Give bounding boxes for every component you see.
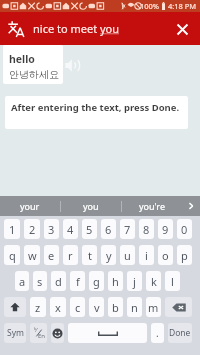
- button[interactable]: Play audio: [64, 57, 80, 73]
- staticText: you're: [139, 200, 165, 212]
- staticText: 2: [29, 222, 36, 237]
- staticText: hello: [9, 52, 35, 66]
- button[interactable]: q: [4, 245, 20, 265]
- button[interactable]: Translate: [0, 13, 32, 45]
- button[interactable]: m: [146, 297, 161, 317]
- button[interactable]: you're: [122, 196, 182, 216]
- button[interactable]: More suggestions: [182, 196, 200, 216]
- button[interactable]: g: [89, 271, 104, 291]
- staticText: x: [55, 300, 61, 315]
- button[interactable]: Close: [166, 13, 198, 45]
- button[interactable]: p: [177, 245, 192, 265]
- button[interactable]: Switch language: [30, 323, 47, 343]
- button[interactable]: l: [165, 271, 180, 291]
- staticText: 4: [67, 222, 74, 237]
- staticText: v: [94, 300, 100, 315]
- button[interactable]: z: [30, 297, 46, 317]
- staticText: 6: [105, 222, 112, 237]
- staticText: 9: [162, 222, 169, 237]
- button[interactable]: Emoji: [51, 323, 64, 343]
- button[interactable]: n: [127, 297, 142, 317]
- button[interactable]: your: [0, 196, 60, 216]
- button[interactable]: f: [70, 271, 85, 291]
- staticText: 4:18 PM: [168, 1, 197, 11]
- button[interactable]: 3: [44, 219, 59, 239]
- staticText: p: [181, 248, 188, 263]
- staticText: En: [38, 332, 46, 340]
- button[interactable]: d: [51, 271, 66, 291]
- button[interactable]: Done: [168, 323, 192, 343]
- button[interactable]: Backspace: [165, 297, 192, 317]
- staticText: c: [75, 300, 81, 315]
- staticText: Sym: [7, 327, 24, 339]
- button[interactable]: 7: [120, 219, 135, 239]
- button[interactable]: v: [89, 297, 104, 317]
- button[interactable]: j: [127, 271, 142, 291]
- staticText: 100%: [140, 1, 160, 11]
- staticText: y: [106, 248, 112, 263]
- button[interactable]: i: [139, 245, 154, 265]
- button[interactable]: 5: [82, 219, 97, 239]
- button[interactable]: 8: [139, 219, 154, 239]
- button[interactable]: r: [63, 245, 78, 265]
- staticText: 5: [86, 222, 93, 237]
- button[interactable]: a: [15, 271, 29, 291]
- staticText: 1: [9, 222, 16, 237]
- button[interactable]: w: [24, 245, 40, 265]
- button[interactable]: Space: [68, 323, 147, 343]
- button[interactable]: y: [101, 245, 116, 265]
- button[interactable]: 1: [4, 219, 20, 239]
- staticText: k: [151, 274, 157, 289]
- staticText: n: [131, 300, 138, 315]
- staticText: t: [88, 248, 92, 263]
- button[interactable]: Shift: [4, 297, 26, 317]
- staticText: 7: [124, 222, 131, 237]
- staticText: nice to meet you: [33, 21, 120, 36]
- button[interactable]: 4: [63, 219, 78, 239]
- staticText: you: [83, 200, 99, 212]
- staticText: 3: [48, 222, 55, 237]
- staticText: 0: [181, 222, 188, 237]
- button[interactable]: x: [50, 297, 66, 317]
- staticText: r: [68, 248, 73, 263]
- staticText: your: [20, 200, 40, 212]
- button[interactable]: h: [108, 271, 123, 291]
- button[interactable]: e: [44, 245, 59, 265]
- button[interactable]: 0: [177, 219, 192, 239]
- staticText: i: [145, 248, 148, 263]
- button[interactable]: 6: [101, 219, 116, 239]
- staticText: .: [156, 326, 159, 340]
- staticText: u: [124, 248, 131, 263]
- staticText: e: [48, 248, 55, 263]
- button[interactable]: you: [61, 196, 121, 216]
- button[interactable]: o: [158, 245, 173, 265]
- button[interactable]: c: [70, 297, 85, 317]
- button[interactable]: .: [151, 323, 164, 343]
- staticText: b: [112, 300, 119, 315]
- staticText: h: [112, 274, 119, 289]
- staticText: d: [55, 274, 62, 289]
- staticText: 안녕하세요: [9, 68, 59, 81]
- button[interactable]: 2: [24, 219, 40, 239]
- staticText: w: [28, 248, 37, 263]
- button[interactable]: u: [120, 245, 135, 265]
- button[interactable]: Sym: [4, 323, 26, 343]
- staticText: f: [76, 274, 80, 289]
- staticText: Done: [169, 327, 191, 339]
- staticText: q: [9, 248, 16, 263]
- button[interactable]: hello: [3, 45, 63, 84]
- button[interactable]: b: [108, 297, 123, 317]
- button[interactable]: After entering the text, press Done.: [5, 96, 188, 129]
- button[interactable]: k: [146, 271, 161, 291]
- staticText: a: [19, 274, 26, 289]
- button[interactable]: 9: [158, 219, 173, 239]
- button[interactable]: s: [33, 271, 47, 291]
- staticText: j: [133, 274, 136, 289]
- staticText: After entering the text, press Done.: [11, 101, 180, 114]
- staticText: l: [171, 274, 174, 289]
- button[interactable]: t: [82, 245, 97, 265]
- staticText: ᵏ⁄: [34, 326, 37, 334]
- staticText: z: [35, 300, 41, 315]
- staticText: s: [37, 274, 43, 289]
- staticText: g: [93, 274, 100, 289]
